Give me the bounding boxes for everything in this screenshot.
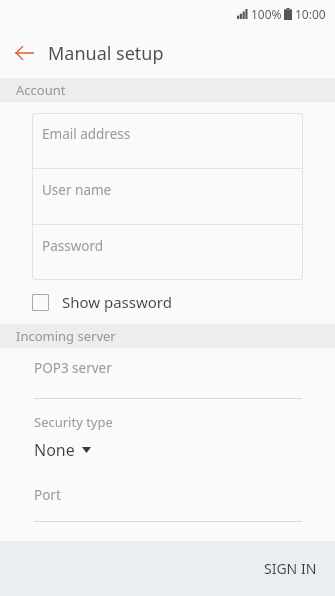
staticText: Security type (34, 413, 113, 431)
staticText: Port (34, 486, 61, 504)
staticText: Incoming server (16, 327, 116, 345)
staticText: Manual setup (48, 41, 164, 66)
staticText: Password (42, 237, 104, 255)
button[interactable]: User name (32, 169, 303, 224)
staticText: Email address (42, 125, 131, 143)
staticText: User name (42, 181, 112, 199)
button[interactable]: None (34, 439, 91, 461)
button[interactable]: Port (0, 479, 335, 521)
staticText: SIGN IN (264, 559, 317, 578)
staticText: 10:00 (295, 6, 326, 22)
staticText: POP3 server (34, 359, 112, 377)
button[interactable]: Password (32, 225, 303, 280)
button[interactable]: Email address (32, 113, 303, 168)
staticText: Show password (62, 292, 172, 312)
staticText: Account (16, 81, 66, 99)
button[interactable]: Show password (0, 280, 335, 324)
staticText: None (34, 439, 75, 461)
staticText: 100% (251, 6, 282, 22)
button[interactable]: Back (6, 35, 42, 71)
button[interactable]: POP3 server (0, 348, 335, 398)
button[interactable]: SIGN IN (246, 545, 335, 592)
